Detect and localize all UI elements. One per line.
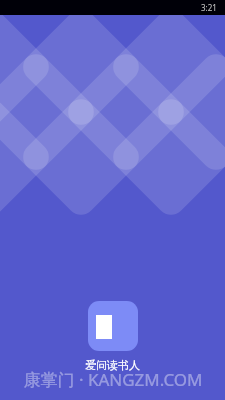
staticText: 爱问读书人 bbox=[85, 358, 140, 372]
button[interactable] bbox=[88, 301, 138, 351]
staticText: 3:21 bbox=[201, 2, 217, 13]
staticText: 康掌门 · KANGZM.COM bbox=[23, 368, 203, 391]
